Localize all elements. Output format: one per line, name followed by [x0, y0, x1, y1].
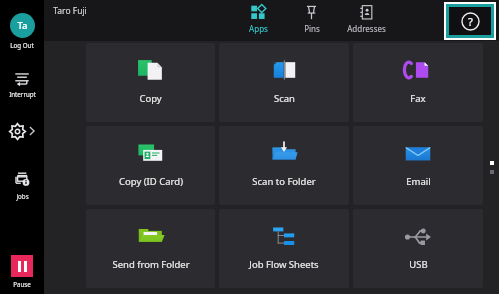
button[interactable]: Copy (ID Card) — [86, 126, 215, 205]
button[interactable]: Interrupt — [0, 70, 44, 98]
button[interactable]: Help — [449, 7, 491, 35]
button[interactable]: Email — [353, 126, 483, 205]
button[interactable]: Ta — [0, 13, 44, 49]
button[interactable]: Apps — [249, 3, 268, 34]
staticText: Ta — [17, 19, 28, 32]
staticText: USB — [409, 258, 428, 271]
button[interactable]: Addresses — [347, 3, 386, 34]
button[interactable]: Jobs — [0, 170, 44, 200]
button[interactable]: USB — [353, 209, 483, 288]
button[interactable]: Fax — [353, 43, 483, 122]
staticText: Scan — [274, 92, 295, 105]
button[interactable]: Copy — [86, 43, 215, 122]
staticText: ? — [468, 14, 473, 29]
button[interactable]: Settings — [0, 118, 44, 144]
staticText: Email — [406, 175, 431, 188]
staticText: Copy — [139, 92, 162, 105]
staticText: Pause — [13, 280, 31, 288]
staticText: Copy (ID Card) — [119, 175, 183, 188]
staticText: Job Flow Sheets — [249, 258, 319, 271]
staticText: Addresses — [347, 23, 386, 34]
staticText: Apps — [249, 23, 268, 34]
button[interactable]: Pins — [302, 3, 321, 34]
button[interactable]: Scan — [219, 43, 349, 122]
button[interactable]: Scan to Folder — [219, 126, 349, 205]
staticText: Jobs — [16, 192, 29, 200]
staticText: Log Out — [10, 41, 34, 49]
button[interactable]: Pause — [0, 255, 44, 288]
staticText: Pins — [304, 23, 320, 34]
staticText: Scan to Folder — [252, 175, 316, 188]
staticText: Fax — [410, 92, 426, 105]
button[interactable]: Job Flow Sheets — [219, 209, 349, 288]
staticText: Send from Folder — [112, 258, 190, 271]
staticText: Taro Fuji — [53, 5, 87, 17]
staticText: Interrupt — [9, 90, 36, 98]
button[interactable]: Send from Folder — [86, 209, 215, 288]
